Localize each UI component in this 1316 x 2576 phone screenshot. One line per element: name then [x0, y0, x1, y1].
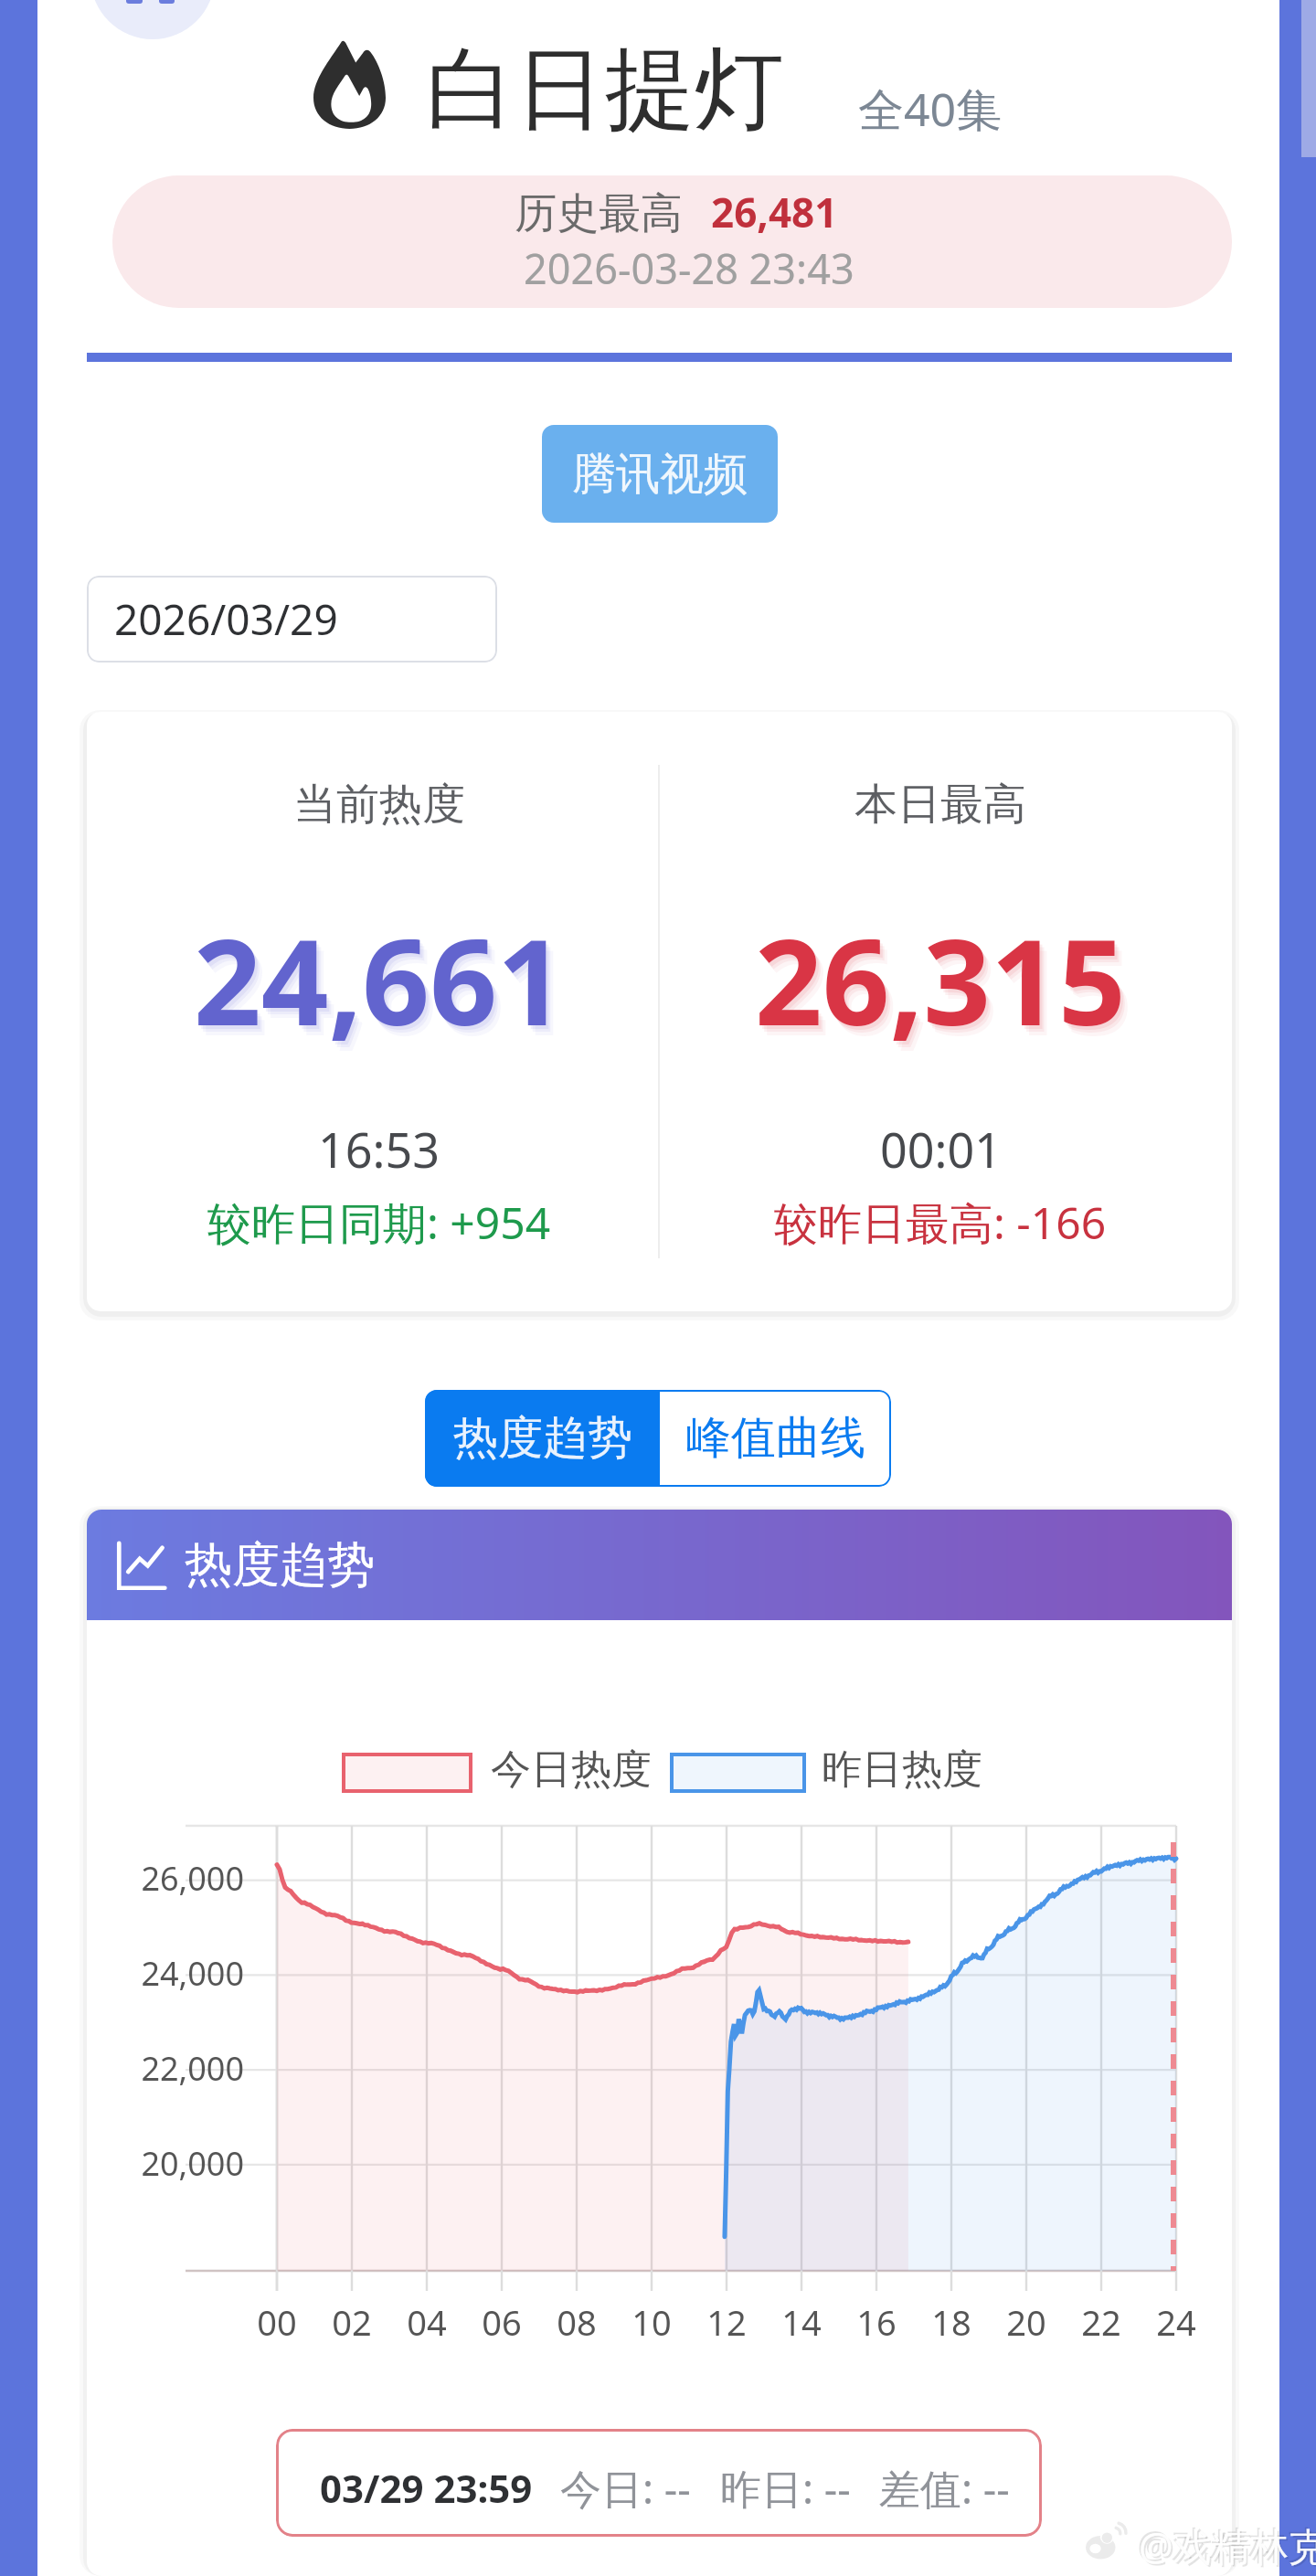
button[interactable]: Profile: [90, 0, 215, 40]
staticText: 较昨日最高: -166: [774, 1193, 1107, 1253]
staticText: 03/29 23:59: [320, 2462, 533, 2514]
staticText: 20: [981, 2298, 1072, 2346]
button[interactable]: 腾讯视频: [542, 425, 778, 523]
staticText: 2026-03-28 23:43: [524, 240, 854, 296]
staticText: 白日提灯: [426, 34, 784, 146]
staticText: 16: [831, 2298, 922, 2346]
staticText: 历史最高: [515, 187, 683, 240]
staticText: 24,661: [201, 909, 572, 1070]
staticText: 腾讯视频: [572, 447, 748, 502]
staticText: 全40集: [858, 78, 1003, 140]
staticText: 24,661: [194, 899, 565, 1060]
button[interactable]: 白日提灯: [313, 27, 1003, 142]
staticText: 18: [906, 2298, 997, 2346]
staticText: 04: [381, 2298, 472, 2346]
staticText: 14: [756, 2298, 847, 2346]
staticText: 20,000: [87, 2141, 244, 2186]
button[interactable]: 峰值曲线: [660, 1390, 891, 1487]
staticText: @戏精林克: [1139, 2519, 1316, 2571]
staticText: 16:53: [318, 1117, 440, 1182]
button[interactable]: 热度趋势: [425, 1390, 660, 1487]
staticText: @戏精林克: [1137, 2518, 1316, 2570]
staticText: 26,315: [762, 909, 1133, 1070]
staticText: 02: [306, 2298, 398, 2346]
staticText: 昨日热度: [822, 1744, 982, 1795]
staticText: 24,661: [198, 906, 569, 1066]
staticText: @戏精林克: [1141, 2521, 1316, 2573]
staticText: 26,315: [759, 906, 1130, 1066]
staticText: 08: [531, 2298, 622, 2346]
staticText: 当前热度: [293, 778, 465, 832]
staticText: 本日最高: [854, 778, 1026, 832]
staticText: 12: [681, 2298, 772, 2346]
button[interactable]: 2026/03/29: [87, 576, 497, 663]
staticText: 26,315: [758, 903, 1129, 1064]
staticText: 差值: --: [879, 2460, 1010, 2516]
staticText: 24,661: [196, 903, 568, 1064]
staticText: 2026/03/29: [114, 590, 338, 648]
staticText: 06: [456, 2298, 547, 2346]
staticText: 峰值曲线: [686, 1410, 865, 1467]
staticText: 00: [231, 2298, 323, 2346]
staticText: 26,315: [755, 899, 1126, 1060]
staticText: 10: [606, 2298, 697, 2346]
staticText: 今日: --: [560, 2460, 691, 2516]
button[interactable]: 历史最高: [112, 175, 1232, 308]
staticText: 26,000: [87, 1856, 244, 1901]
staticText: 昨日: --: [720, 2460, 851, 2516]
staticText: 今日热度: [491, 1744, 652, 1795]
staticText: 24: [1130, 2298, 1222, 2346]
staticText: 较昨日同期: +954: [207, 1193, 551, 1253]
staticText: 24,000: [87, 1951, 244, 1996]
staticText: 22: [1056, 2298, 1147, 2346]
staticText: 热度趋势: [185, 1535, 375, 1595]
staticText: 22,000: [87, 2046, 244, 2091]
staticText: 热度趋势: [453, 1410, 632, 1467]
staticText: 26,481: [711, 185, 838, 239]
staticText: 00:01: [880, 1117, 1002, 1182]
